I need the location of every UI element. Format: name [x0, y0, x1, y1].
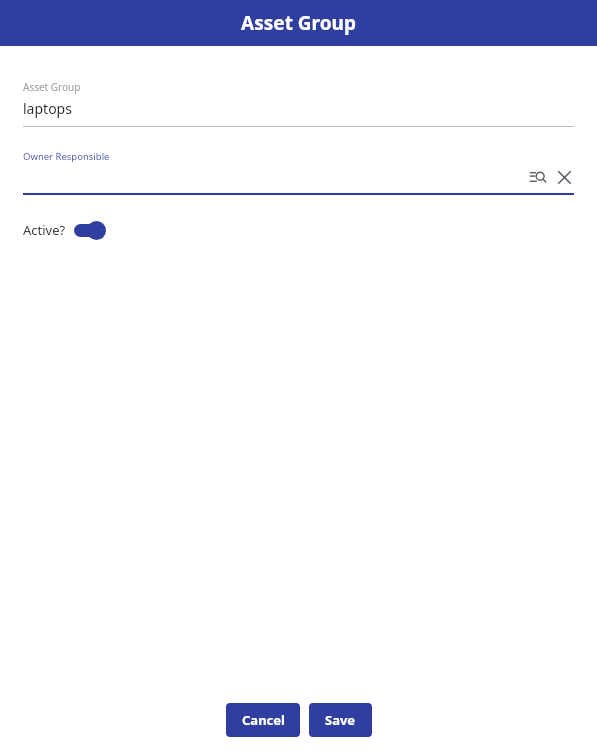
button[interactable]: Search owner — [528, 167, 548, 187]
staticText: Cancel — [242, 711, 285, 729]
button[interactable]: Active toggle — [74, 219, 108, 241]
staticText: Active? — [23, 221, 66, 239]
button[interactable]: Owner Responsible — [23, 150, 574, 195]
button[interactable]: Cancel — [226, 703, 300, 737]
staticText: laptops — [23, 99, 72, 118]
staticText: Asset Group — [23, 80, 81, 94]
staticText: Save — [325, 711, 356, 729]
button[interactable]: Save — [309, 703, 372, 737]
button[interactable]: Asset Group — [23, 80, 574, 127]
staticText: Owner Responsible — [23, 150, 110, 163]
staticText: Asset Group — [241, 10, 356, 36]
button[interactable]: Clear — [554, 167, 574, 187]
